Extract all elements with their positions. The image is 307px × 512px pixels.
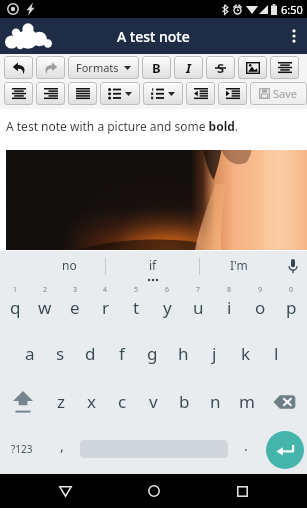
button[interactable]: k <box>230 330 261 378</box>
staticText: 0 <box>289 285 294 295</box>
button[interactable] <box>36 82 65 105</box>
staticText: if <box>149 257 157 273</box>
staticText: S <box>217 59 225 77</box>
button[interactable]: j <box>199 330 230 378</box>
staticText: z <box>57 390 65 413</box>
staticText: . <box>244 436 248 455</box>
staticText: no <box>62 257 77 273</box>
button[interactable]: 8 <box>214 282 245 330</box>
button[interactable]: B <box>142 56 171 79</box>
button[interactable]: l <box>261 330 292 378</box>
button[interactable]: Recents <box>219 474 265 508</box>
staticText: p <box>286 296 297 319</box>
button[interactable]: x <box>76 378 107 425</box>
button[interactable]: m <box>231 378 262 425</box>
staticText: A test note with a picture and some bold… <box>6 118 239 134</box>
button[interactable]: 2 <box>30 282 60 330</box>
staticText: 4 <box>103 285 108 295</box>
staticText: n <box>210 390 221 413</box>
staticText: i <box>227 296 232 319</box>
staticText: I <box>186 59 191 77</box>
staticText: a <box>25 342 35 365</box>
button[interactable]: 3 <box>60 282 90 330</box>
staticText: 5 <box>134 285 139 295</box>
button[interactable] <box>270 56 299 79</box>
staticText: Save <box>273 86 298 101</box>
staticText: j <box>212 342 217 365</box>
button[interactable]: 4 <box>90 282 121 330</box>
staticText: o <box>255 296 266 319</box>
button[interactable]: . <box>228 425 263 474</box>
button[interactable]: f <box>106 330 137 378</box>
staticText: 1 <box>13 285 18 295</box>
staticText: b <box>179 390 190 413</box>
button[interactable]: v <box>138 378 169 425</box>
button[interactable] <box>238 56 267 79</box>
staticText: x <box>87 390 96 413</box>
button[interactable]: 6 <box>152 282 183 330</box>
button[interactable]: , <box>44 425 80 474</box>
button[interactable] <box>4 82 33 105</box>
button[interactable]: 9 <box>245 282 276 330</box>
button[interactable]: 7 <box>183 282 214 330</box>
staticText: 6:50 <box>281 2 303 17</box>
button[interactable]: S <box>206 56 235 79</box>
staticText: Formats <box>76 60 119 75</box>
button[interactable]: ?123 <box>0 425 44 474</box>
button[interactable]: g <box>137 330 168 378</box>
staticText: v <box>149 390 158 413</box>
button[interactable]: Formats <box>68 56 139 79</box>
staticText: l <box>274 342 279 365</box>
button[interactable] <box>4 56 33 79</box>
staticText: r <box>102 296 110 319</box>
staticText: 9 <box>258 285 263 295</box>
button[interactable]: 0 <box>276 282 307 330</box>
button[interactable] <box>143 82 183 105</box>
button[interactable]: Voice input <box>278 251 307 282</box>
button[interactable]: I <box>174 56 203 79</box>
button[interactable]: Back <box>42 474 88 508</box>
button[interactable] <box>218 82 247 105</box>
staticText: u <box>193 296 204 319</box>
staticText: f <box>119 342 125 365</box>
button[interactable]: b <box>169 378 200 425</box>
button[interactable]: I'm <box>200 251 278 282</box>
button[interactable]: d <box>75 330 106 378</box>
staticText: k <box>241 342 251 365</box>
button[interactable] <box>68 82 97 105</box>
staticText: 7 <box>196 285 201 295</box>
button[interactable]: a <box>15 330 45 378</box>
staticText: m <box>239 390 255 413</box>
button[interactable]: More options <box>281 18 307 54</box>
button[interactable]: Space <box>80 425 228 474</box>
staticText: 6 <box>165 285 170 295</box>
button[interactable]: z <box>45 378 76 425</box>
button[interactable]: Enter <box>266 431 304 469</box>
staticText: 8 <box>227 285 232 295</box>
button[interactable]: no <box>33 251 105 282</box>
staticText: h <box>178 342 189 365</box>
button[interactable] <box>186 82 215 105</box>
button[interactable] <box>36 56 65 79</box>
button[interactable]: h <box>168 330 199 378</box>
staticText: e <box>70 296 80 319</box>
staticText: w <box>38 296 52 319</box>
staticText: s <box>56 342 65 365</box>
button[interactable]: if <box>106 251 199 282</box>
staticText: d <box>85 342 96 365</box>
button[interactable] <box>100 82 140 105</box>
staticText: q <box>10 296 21 319</box>
button[interactable]: n <box>200 378 231 425</box>
button[interactable]: c <box>107 378 138 425</box>
staticText: I'm <box>230 257 248 273</box>
staticText: ?123 <box>11 442 33 456</box>
button[interactable]: Delete <box>262 378 307 425</box>
button[interactable]: 5 <box>121 282 152 330</box>
staticText: 2 <box>43 285 48 295</box>
staticText: g <box>147 342 158 365</box>
button[interactable]: 1 <box>0 282 30 330</box>
button[interactable]: Shift <box>0 378 45 425</box>
button[interactable]: s <box>45 330 75 378</box>
button[interactable]: Save <box>250 82 307 105</box>
button[interactable]: Home <box>131 474 177 508</box>
